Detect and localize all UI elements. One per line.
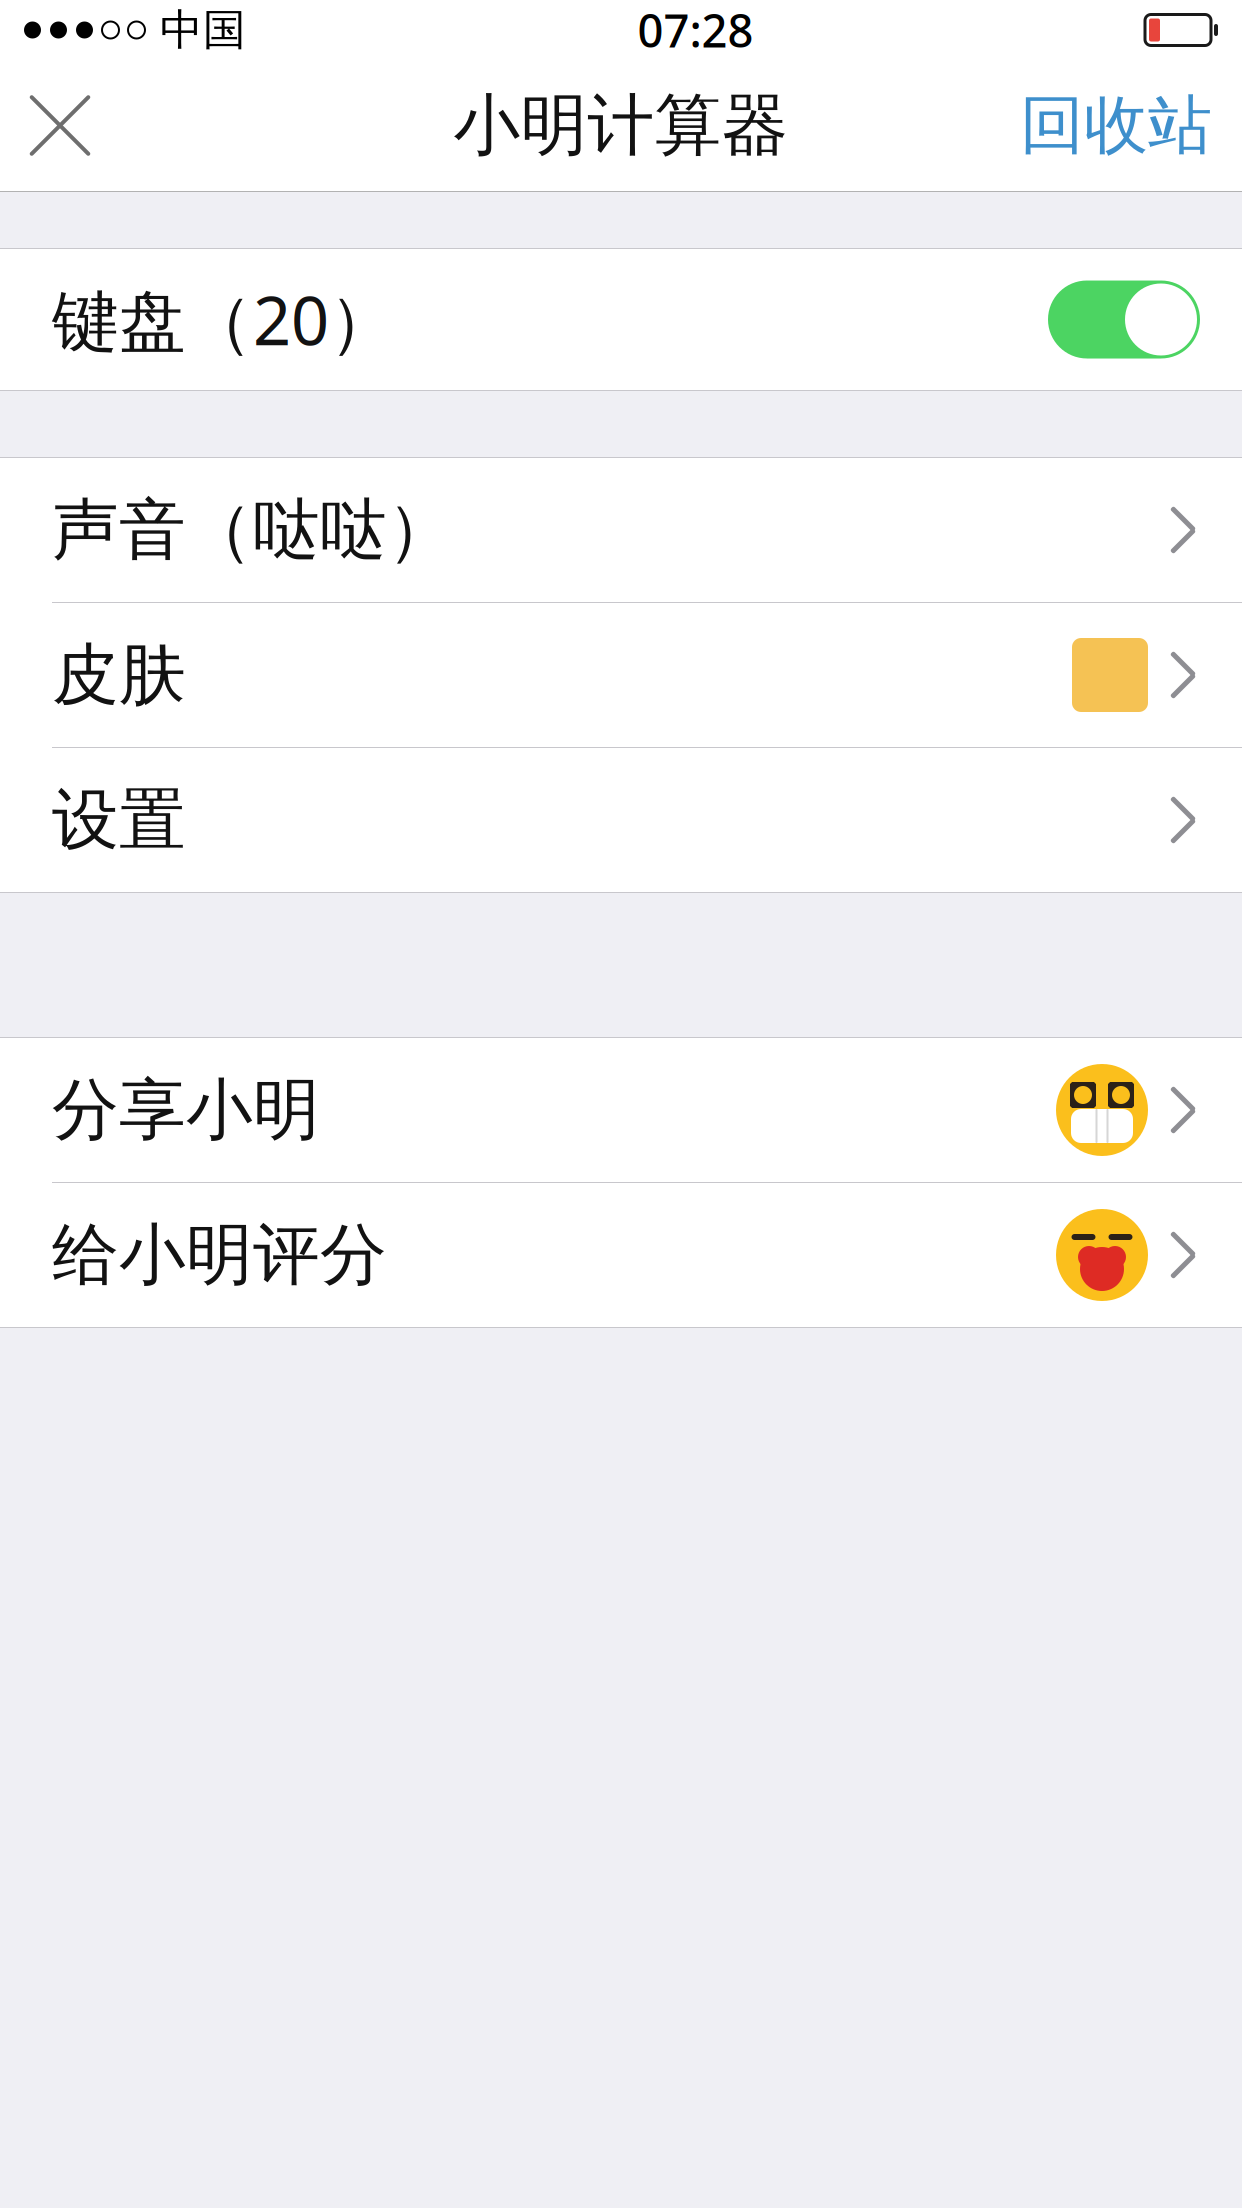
button[interactable]: 回收站 bbox=[990, 60, 1242, 191]
staticText: 声音（哒哒） bbox=[52, 489, 454, 571]
button[interactable]: 分享小明 bbox=[0, 1038, 1242, 1182]
staticText: 07:28 bbox=[637, 0, 753, 60]
button[interactable]: 关闭 bbox=[0, 60, 120, 191]
staticText: 设置 bbox=[52, 779, 186, 861]
staticText: 分享小明 bbox=[52, 1069, 320, 1151]
staticText: 皮肤 bbox=[52, 634, 186, 716]
button[interactable]: 键盘（20） bbox=[0, 249, 1242, 390]
staticText: 键盘（20） bbox=[52, 275, 396, 364]
staticText: 小明计算器 bbox=[453, 85, 788, 166]
staticText: 给小明评分 bbox=[52, 1214, 387, 1296]
button[interactable]: 皮肤 bbox=[0, 603, 1242, 747]
staticText: 回收站 bbox=[1020, 86, 1212, 165]
staticText: 中国 bbox=[160, 4, 246, 56]
button[interactable]: 声音（哒哒） bbox=[0, 458, 1242, 602]
button[interactable]: 给小明评分 bbox=[0, 1183, 1242, 1327]
button[interactable]: 设置 bbox=[0, 748, 1242, 892]
